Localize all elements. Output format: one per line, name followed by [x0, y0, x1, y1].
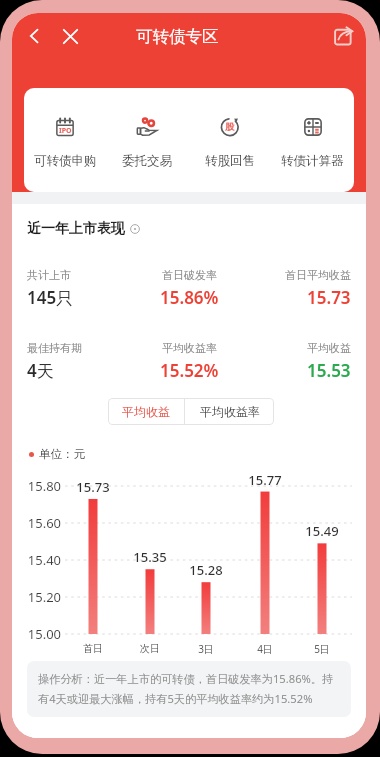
staticText: 平均收益率	[200, 404, 260, 419]
staticText: 可转债申购	[34, 153, 97, 169]
staticText: 15.35	[133, 548, 167, 566]
staticText: 平均收益	[307, 341, 351, 355]
button[interactable]: 股	[188, 88, 271, 192]
staticText: 15.00	[27, 625, 61, 643]
button[interactable]: 转债计算器	[271, 88, 354, 192]
button[interactable]: Share	[326, 19, 360, 53]
staticText: 15.49	[305, 522, 339, 540]
staticText: 15.53	[307, 359, 351, 382]
staticText: 15.40	[27, 551, 61, 569]
staticText: 股	[225, 121, 235, 133]
staticText: 5日	[314, 642, 330, 656]
staticText: 近一年上市表现	[27, 220, 125, 238]
staticText: 145只	[27, 286, 74, 309]
button[interactable]: IPO	[24, 88, 106, 192]
button[interactable]: 委托交易	[106, 88, 188, 192]
staticText: 15.52%	[160, 359, 219, 382]
staticText: 首日平均收益	[285, 268, 351, 282]
staticText: 首日破发率	[162, 268, 217, 282]
staticText: 15.73	[307, 286, 351, 309]
button[interactable]: Back	[19, 21, 49, 51]
staticText: 15.20	[27, 588, 61, 606]
staticText: 15.28	[189, 561, 223, 579]
staticText: 4天	[27, 359, 54, 382]
staticText: IPO	[59, 126, 72, 136]
staticText: 4日	[257, 642, 273, 656]
staticText: 15.80	[27, 477, 61, 495]
staticText: 共计上市	[27, 268, 71, 282]
button[interactable]: 平均收益率	[185, 398, 274, 425]
button[interactable]: Close	[55, 21, 85, 51]
staticText: 可转债专区	[136, 26, 219, 47]
staticText: 单位：元	[39, 447, 85, 461]
staticText: 最佳持有期	[27, 341, 82, 355]
staticText: 15.73	[76, 478, 110, 496]
staticText: 次日	[140, 642, 160, 655]
staticText: 转股回售	[205, 153, 255, 169]
staticText: 平均收益	[122, 404, 170, 419]
staticText: 操作分析：近一年上市的可转债，首日破发率为15.86%。持有4天或迎最大涨幅，持…	[38, 671, 344, 706]
button[interactable]: 平均收益	[108, 398, 184, 425]
staticText: 15.77	[248, 471, 282, 489]
staticText: 15.60	[27, 514, 61, 532]
staticText: 3日	[198, 642, 214, 656]
staticText: 首日	[83, 642, 103, 655]
staticText: 委托交易	[122, 153, 172, 169]
staticText: 转债计算器	[281, 153, 344, 169]
staticText: 15.86%	[160, 286, 219, 309]
staticText: 平均收益率	[162, 341, 217, 355]
